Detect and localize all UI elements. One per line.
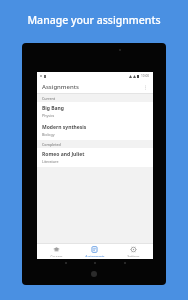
staticText: Courses <box>50 255 63 257</box>
staticText: Completed <box>42 142 61 147</box>
staticText: Romeo and Juliet <box>42 151 85 158</box>
staticText: Assignments <box>85 255 105 257</box>
button[interactable]: Courses <box>37 244 75 259</box>
button[interactable]: Assignments <box>75 244 114 259</box>
staticText: 10:00 <box>141 74 150 78</box>
staticText: Settings <box>127 255 140 257</box>
staticText: Big Bang <box>42 105 65 112</box>
button[interactable]: Modern synthesis <box>37 121 153 140</box>
staticText: Manage your assignments <box>27 13 161 27</box>
staticText: Current <box>42 96 56 101</box>
staticText: Physics <box>42 113 55 118</box>
button[interactable]: More options <box>141 83 150 92</box>
staticText: Biology <box>42 132 55 137</box>
button[interactable]: Settings <box>114 244 153 259</box>
staticText: Modern synthesis <box>42 124 87 131</box>
button[interactable]: Romeo and Juliet <box>37 148 153 167</box>
staticText: Assignments <box>42 83 79 91</box>
button[interactable]: Big Bang <box>37 102 153 121</box>
staticText: Literature <box>42 159 59 164</box>
